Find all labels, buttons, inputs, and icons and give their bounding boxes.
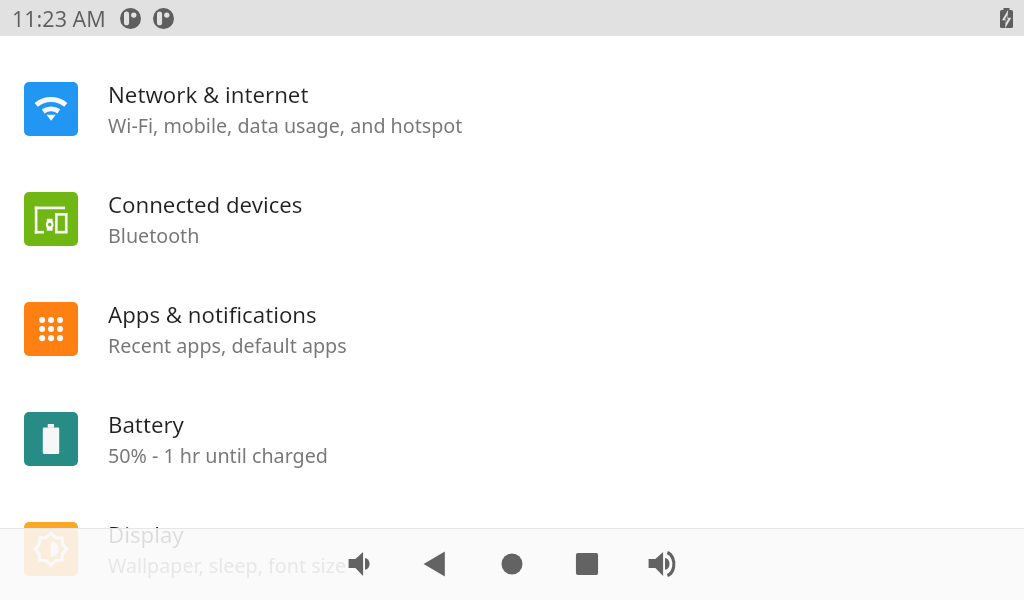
button[interactable]: Volume down	[337, 539, 387, 589]
button[interactable]: Back	[412, 539, 462, 589]
staticText: Connected devices	[108, 189, 303, 219]
button[interactable]: Battery	[0, 384, 1024, 494]
button[interactable]: Volume up	[637, 539, 687, 589]
button[interactable]: Network & internet	[0, 54, 1024, 164]
button[interactable]: Apps & notifications	[0, 274, 1024, 384]
staticText: 11:23 AM	[12, 4, 106, 33]
staticText: Apps & notifications	[108, 299, 317, 329]
staticText: Network & internet	[108, 79, 309, 109]
staticText: Display	[108, 519, 184, 549]
staticText: Wi-Fi, mobile, data usage, and hotspot	[108, 112, 463, 139]
button[interactable]: Home	[487, 539, 537, 589]
staticText: 50% - 1 hr until charged	[108, 442, 328, 469]
staticText: Wallpaper, sleep, font size	[108, 552, 347, 579]
staticText: Bluetooth	[108, 222, 200, 249]
button[interactable]: Recents	[562, 539, 612, 589]
button[interactable]: Connected devices	[0, 164, 1024, 274]
staticText: Battery	[108, 409, 184, 439]
button[interactable]: Display	[0, 494, 1024, 600]
staticText: Recent apps, default apps	[108, 332, 347, 359]
